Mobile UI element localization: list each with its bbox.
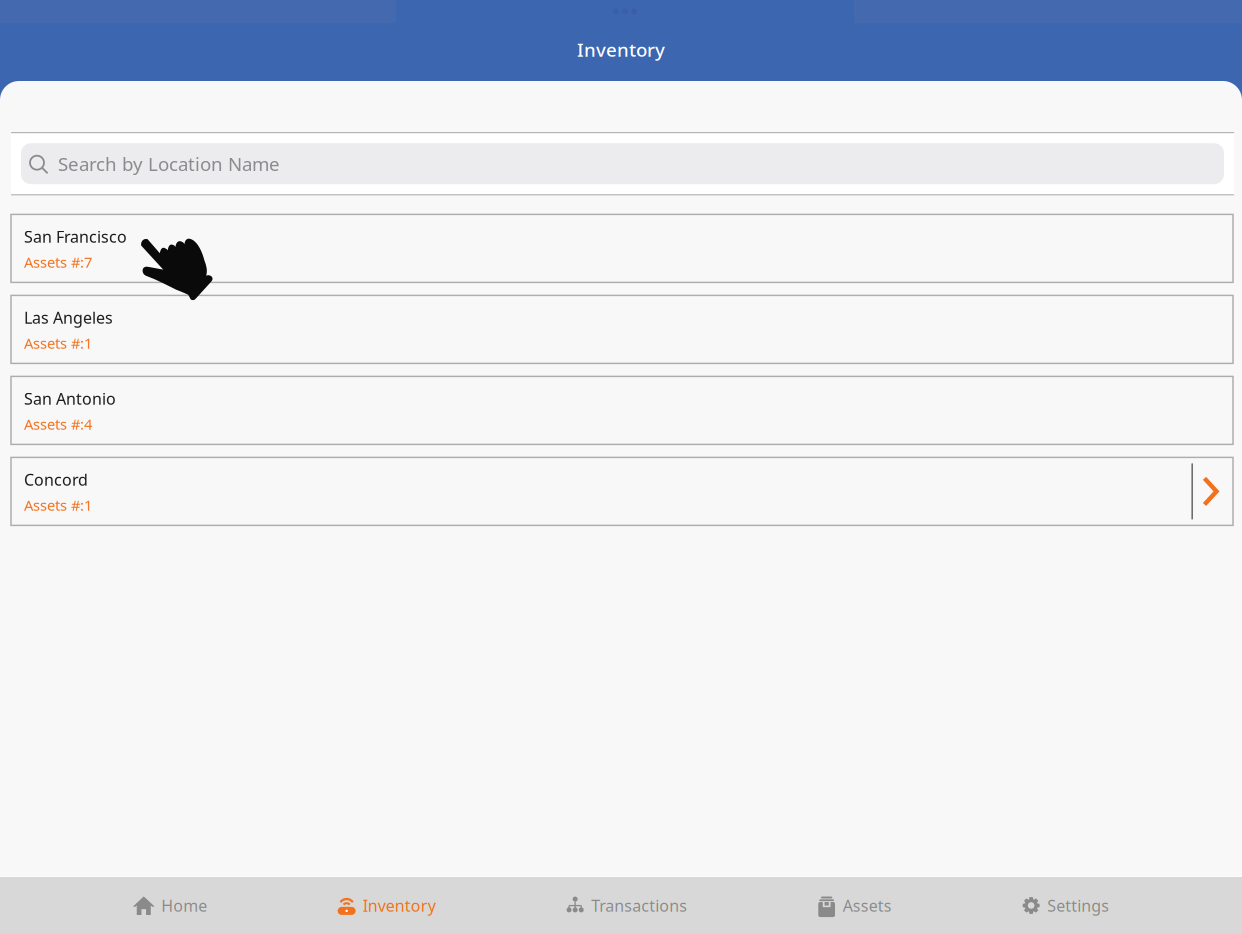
button[interactable]: Settings bbox=[1022, 876, 1109, 934]
button[interactable]: Home bbox=[133, 876, 207, 934]
button[interactable]: San Francisco bbox=[11, 214, 1233, 282]
staticText: Home bbox=[161, 895, 207, 916]
staticText: San Francisco bbox=[24, 226, 127, 247]
staticText: Search by Location Name bbox=[58, 151, 280, 176]
button[interactable]: Las Angeles bbox=[11, 295, 1233, 363]
button[interactable]: Transactions bbox=[566, 876, 687, 934]
button[interactable]: Concord bbox=[11, 457, 1233, 525]
staticText: Inventory bbox=[577, 37, 665, 62]
staticText: Inventory bbox=[363, 895, 436, 916]
staticText: Assets #:1 bbox=[24, 495, 92, 515]
staticText: Settings bbox=[1047, 895, 1109, 916]
staticText: Las Angeles bbox=[24, 307, 113, 328]
button[interactable]: San Antonio bbox=[11, 376, 1233, 444]
button[interactable]: Inventory bbox=[337, 876, 436, 934]
staticText: San Antonio bbox=[24, 388, 116, 409]
staticText: Assets #:7 bbox=[24, 252, 92, 272]
button[interactable]: Assets bbox=[817, 876, 892, 934]
staticText: Transactions bbox=[591, 895, 687, 916]
staticText: Concord bbox=[24, 469, 88, 490]
staticText: Assets #:4 bbox=[24, 414, 92, 434]
staticText: Assets bbox=[843, 895, 892, 916]
staticText: Assets #:1 bbox=[24, 333, 92, 353]
